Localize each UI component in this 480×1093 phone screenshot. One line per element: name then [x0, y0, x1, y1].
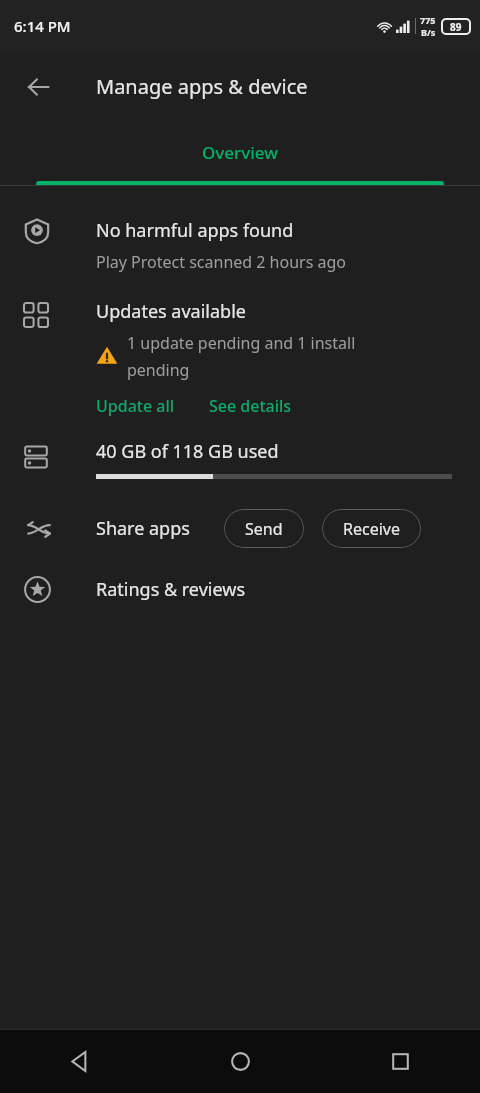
staticText: Ratings & reviews — [96, 577, 246, 602]
button[interactable]: See details — [209, 395, 292, 417]
button[interactable]: Receive — [322, 509, 421, 548]
button[interactable]: Overview — [0, 121, 480, 185]
button[interactable]: Recents — [320, 1030, 480, 1093]
staticText: Update all — [96, 395, 175, 417]
button[interactable]: Send — [224, 509, 304, 548]
staticText: Manage apps & device — [96, 73, 308, 100]
staticText: See details — [209, 395, 292, 417]
staticText: Receive — [343, 518, 400, 540]
staticText: No harmful apps found — [96, 218, 294, 243]
button[interactable]: 40 GB of 118 GB used — [0, 439, 480, 479]
button[interactable]: No harmful apps found — [0, 218, 480, 273]
button[interactable]: Ratings & reviews — [0, 576, 480, 603]
staticText: B/s — [421, 26, 436, 38]
staticText: Play Protect scanned 2 hours ago — [96, 251, 346, 273]
button[interactable]: Back — [16, 65, 60, 109]
button[interactable]: Back — [0, 1030, 160, 1093]
staticText: Send — [245, 518, 283, 540]
staticText: 40 GB of 118 GB used — [96, 439, 279, 464]
staticText: 1 update pending and 1 install pending — [127, 332, 356, 381]
button[interactable]: Update all — [96, 395, 175, 417]
button[interactable]: Home — [160, 1030, 320, 1093]
staticText: Share apps — [96, 516, 190, 541]
staticText: 89 — [450, 20, 462, 34]
staticText: Updates available — [96, 299, 246, 324]
staticText: 775 — [420, 14, 436, 26]
staticText: 6:14 PM — [14, 16, 71, 36]
staticText: Overview — [202, 141, 278, 164]
